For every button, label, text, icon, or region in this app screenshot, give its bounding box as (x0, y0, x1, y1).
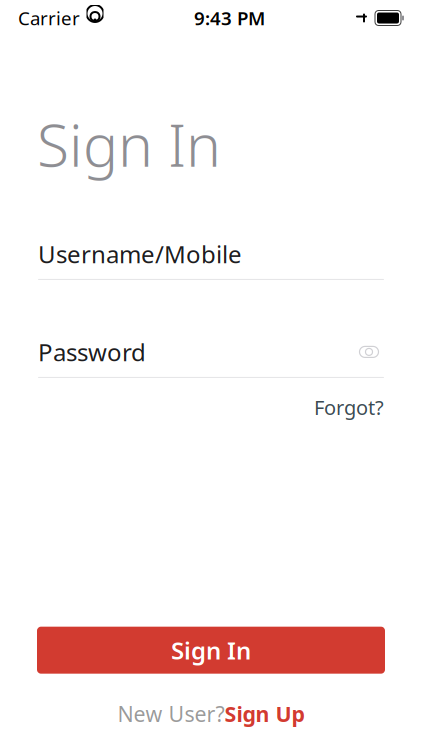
staticText: Username/Mobile (38, 238, 242, 270)
staticText: Password (38, 336, 146, 368)
staticText: Sign In (37, 105, 221, 183)
button[interactable]: Show password (354, 340, 384, 364)
button[interactable]: Sign In (37, 627, 385, 674)
staticText: 9:43 PM (194, 6, 265, 30)
staticText: Forgot? (314, 394, 384, 420)
staticText: New User? (117, 700, 224, 728)
staticText: Sign Up (224, 700, 304, 728)
staticText: Sign In (171, 634, 251, 666)
staticText: Carrier (18, 6, 80, 30)
button[interactable]: Forgot? (314, 394, 384, 420)
button[interactable]: Sign Up (224, 700, 304, 728)
